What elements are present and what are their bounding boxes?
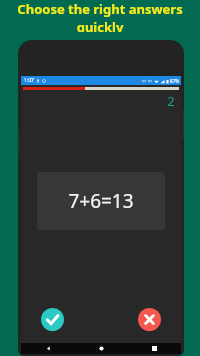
button[interactable]: Back bbox=[21, 343, 75, 354]
button[interactable]: Wrong bbox=[138, 308, 161, 331]
staticText: 7+6=13 bbox=[68, 188, 134, 214]
button[interactable]: Recents bbox=[128, 343, 181, 354]
staticText: 87% bbox=[170, 78, 179, 84]
staticText: Choose the right answers quickly bbox=[0, 0, 200, 32]
button[interactable]: 7+6=13 bbox=[37, 172, 165, 230]
staticText: 1:07 bbox=[24, 77, 34, 84]
button[interactable]: Home bbox=[75, 343, 128, 354]
button[interactable]: Correct bbox=[41, 308, 64, 331]
staticText: 2 bbox=[167, 92, 175, 110]
